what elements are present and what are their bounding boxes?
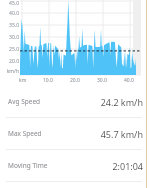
button[interactable]: Avg Speed — [0, 86, 150, 117]
staticText: km/h — [2, 68, 19, 75]
button[interactable]: Max Speed — [0, 118, 150, 149]
staticText: Max Speed — [8, 129, 42, 138]
staticText: 30.0 — [2, 34, 19, 41]
staticText: 2:01:04 — [112, 160, 143, 172]
staticText: 40.0 — [124, 77, 134, 84]
staticText: 20.0 — [2, 58, 19, 65]
staticText: 30.0 — [97, 77, 107, 84]
staticText: 25.0 — [2, 46, 19, 53]
staticText: Avg Speed — [8, 97, 41, 106]
staticText: 40.0 — [2, 10, 19, 17]
staticText: 45.0 — [2, 0, 19, 7]
button[interactable]: Moving Time — [0, 150, 150, 181]
staticText: 10.0 — [43, 77, 53, 84]
staticText: 20.0 — [70, 77, 80, 84]
staticText: 24.2 km/h — [100, 96, 143, 108]
staticText: Moving Time — [8, 161, 48, 170]
staticText: 45.7 km/h — [100, 128, 143, 140]
staticText: km — [19, 77, 27, 84]
staticText: 35.0 — [2, 22, 19, 29]
